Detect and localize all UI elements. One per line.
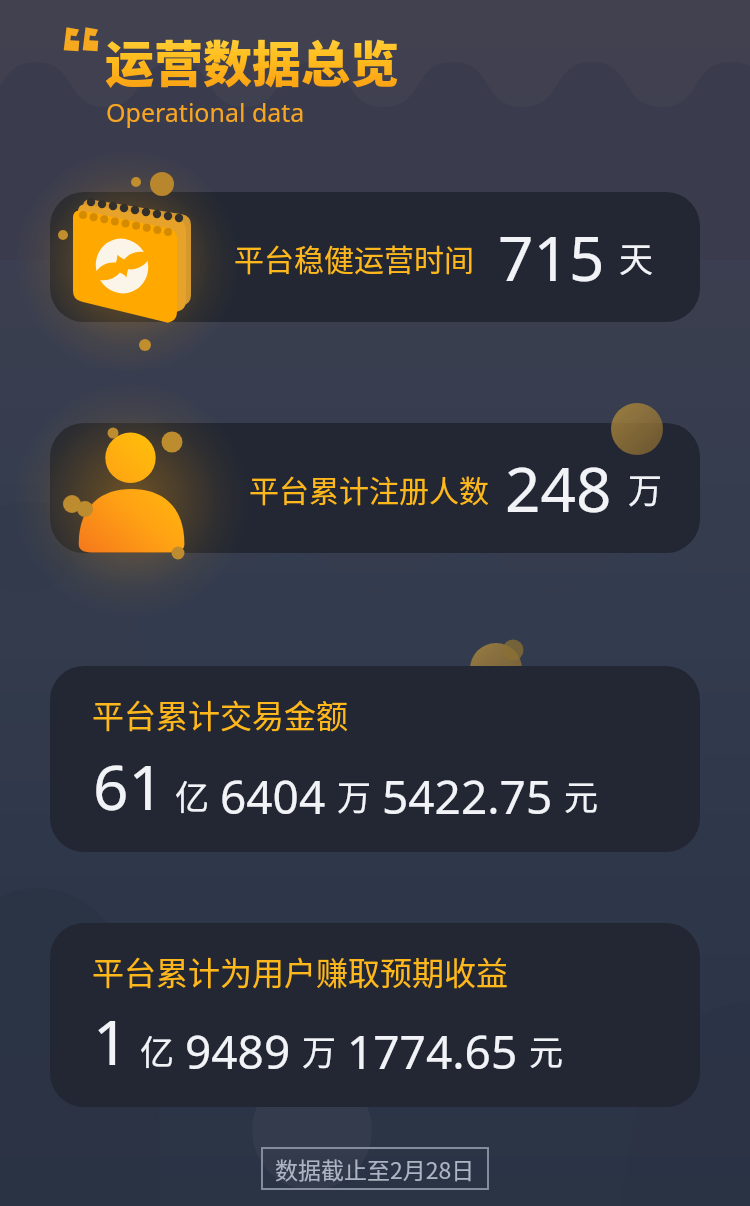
staticText: 元 [529, 1026, 563, 1075]
staticText: 万 [302, 1026, 336, 1075]
staticText: 数据截止至2月28日 [275, 1152, 475, 1185]
staticText: 平台累计交易金额 [92, 691, 349, 737]
staticText: 9489 [185, 1020, 291, 1083]
other: Operating days [0, 0, 750, 1206]
staticText: 6404 [220, 765, 326, 828]
staticText: 715 [498, 215, 605, 299]
staticText: 平台累计注册人数 [249, 467, 489, 510]
staticText: 万 [628, 464, 662, 513]
staticText: 平台累计为用户赚取预期收益 [92, 948, 509, 994]
button[interactable] [50, 666, 700, 852]
button[interactable] [50, 923, 700, 1107]
staticText: 亿 [140, 1026, 174, 1075]
staticText: 平台稳健运营时间 [234, 236, 474, 279]
other: Quote [60, 26, 104, 58]
staticText: 1 [93, 999, 129, 1083]
staticText: 天 [619, 233, 653, 282]
staticText: 5422.75 [382, 765, 553, 828]
button[interactable] [50, 192, 700, 322]
staticText: 248 [505, 446, 612, 530]
staticText: 运营数据总览 [105, 25, 400, 96]
staticText: Operational data [106, 95, 305, 129]
staticText: 万 [337, 771, 371, 820]
staticText: 亿 [175, 771, 209, 820]
staticText: 1774.65 [347, 1020, 518, 1083]
staticText: 元 [564, 771, 598, 820]
staticText: 61 [93, 744, 164, 828]
button[interactable] [50, 423, 700, 553]
button[interactable]: 数据截止至2月28日 [275, 1152, 475, 1185]
other: Registered users [0, 0, 750, 1206]
